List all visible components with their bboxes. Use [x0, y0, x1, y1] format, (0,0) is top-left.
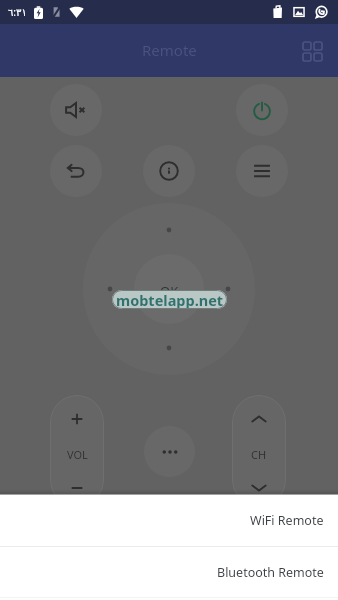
staticText: Remote: [142, 40, 197, 60]
button[interactable]: Back: [50, 145, 102, 197]
staticText: mobtelapp.net: [116, 290, 224, 309]
button[interactable]: Info: [143, 145, 195, 197]
button[interactable]: Menu: [236, 145, 288, 197]
button[interactable]: CH up: [232, 395, 286, 441]
button[interactable]: Bluetooth Remote: [0, 547, 338, 597]
button[interactable]: WiFi Remote: [0, 495, 338, 546]
button[interactable]: More: [144, 426, 195, 477]
button[interactable]: CH down: [232, 461, 286, 507]
staticText: WiFi Remote: [250, 512, 324, 529]
staticText: Bluetooth Remote: [217, 564, 324, 581]
button[interactable]: VOL up: [50, 395, 104, 441]
button[interactable]: OK: [134, 254, 204, 324]
button[interactable]: Mute: [50, 84, 102, 136]
staticText: ٦:٣١: [8, 5, 27, 19]
button[interactable]: Power: [236, 84, 288, 136]
button[interactable]: Apps: [293, 32, 331, 70]
staticText: CH: [251, 447, 267, 462]
button[interactable]: VOL down: [50, 461, 104, 507]
staticText: VOL: [67, 447, 88, 462]
staticText: OK: [160, 282, 179, 300]
